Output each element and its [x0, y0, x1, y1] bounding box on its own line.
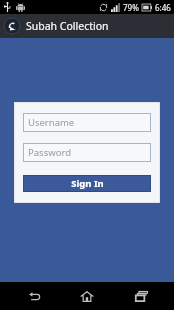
- staticText: 6:46: [155, 2, 171, 13]
- button[interactable]: Home: [67, 282, 107, 310]
- staticText: Subah Collection: [26, 19, 109, 33]
- staticText: Password: [28, 146, 71, 159]
- button[interactable]: Username: [23, 113, 151, 132]
- staticText: 79%: [123, 2, 139, 13]
- staticText: Sign In: [71, 177, 104, 190]
- staticText: Username: [28, 116, 75, 129]
- other: App logo: [4, 18, 20, 34]
- button[interactable]: Back: [14, 282, 54, 310]
- button[interactable]: Sign In: [23, 175, 151, 192]
- button[interactable]: Recent apps: [121, 282, 161, 310]
- button[interactable]: Password: [23, 143, 151, 162]
